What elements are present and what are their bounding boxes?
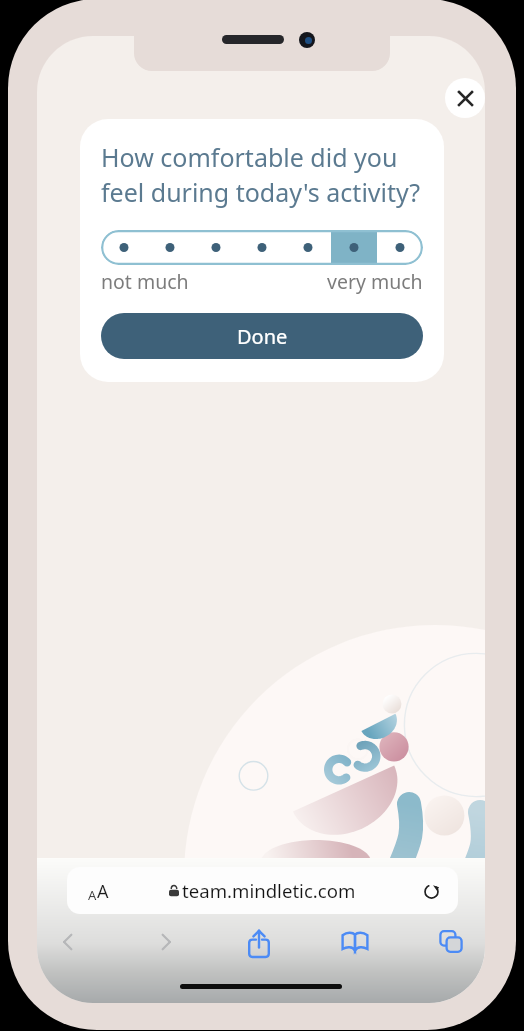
button[interactable]: Close xyxy=(445,78,485,118)
staticText: not much xyxy=(101,268,189,295)
button[interactable]: Tabs xyxy=(429,925,473,959)
button[interactable]: Share xyxy=(237,925,281,959)
button[interactable]: Back xyxy=(46,925,90,959)
staticText: very much xyxy=(327,268,423,295)
staticText: Done xyxy=(237,323,288,350)
button[interactable]: Comfort rating slider xyxy=(101,230,423,265)
button[interactable]: Address bar xyxy=(67,867,458,914)
button[interactable]: Done xyxy=(101,313,423,359)
staticText: team.mindletic.com xyxy=(182,878,356,903)
staticText: A xyxy=(97,879,109,904)
button[interactable]: Forward xyxy=(144,925,188,959)
button[interactable]: Bookmarks xyxy=(333,925,377,959)
staticText: A xyxy=(88,886,97,904)
staticText: How comfortable did you feel during toda… xyxy=(101,140,421,210)
